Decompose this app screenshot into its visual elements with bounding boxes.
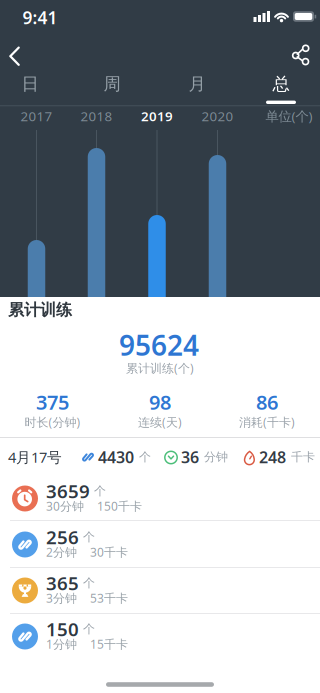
staticText: 53千卡 — [90, 590, 128, 606]
staticText: 3分钟 — [46, 590, 77, 606]
button[interactable]: 3659 — [12, 475, 320, 521]
staticText: 1分钟 — [46, 636, 77, 652]
button[interactable]: 日 — [0, 67, 60, 101]
staticText: 36 — [181, 446, 199, 468]
staticText: 个 — [139, 450, 151, 464]
button[interactable] — [5, 44, 29, 68]
staticText: 9:41 — [22, 6, 57, 29]
staticText: 365 — [46, 571, 79, 595]
button[interactable]: 150 — [12, 613, 320, 659]
staticText: 月 — [188, 73, 205, 95]
staticText: 375 — [36, 389, 69, 415]
staticText: 2020 — [201, 107, 233, 125]
staticText: 30千卡 — [90, 544, 128, 560]
button[interactable]: 总 — [242, 67, 320, 101]
staticText: 2019 — [141, 107, 173, 125]
staticText: 86 — [256, 389, 278, 415]
staticText: 分钟 — [204, 450, 228, 464]
staticText: 个 — [83, 622, 95, 636]
staticText: 时长(分钟) — [24, 414, 80, 430]
staticText: 总 — [272, 73, 289, 95]
staticText: 248 — [259, 446, 286, 468]
staticText: 2分钟 — [46, 544, 77, 560]
button[interactable]: 月 — [164, 67, 230, 101]
staticText: 个 — [83, 576, 95, 590]
staticText: 2018 — [80, 107, 112, 125]
staticText: 30分钟 — [46, 498, 84, 514]
staticText: 98 — [149, 389, 171, 415]
staticText: 3659 — [46, 479, 90, 503]
staticText: 单位(个) — [265, 107, 312, 125]
staticText: 累计训练(个) — [126, 360, 194, 376]
staticText: 连续(天) — [138, 414, 182, 430]
button[interactable]: 256 — [12, 521, 320, 567]
staticText: 4月17号 — [8, 447, 62, 467]
staticText: 日 — [21, 73, 38, 95]
staticText: 消耗(千卡) — [239, 414, 295, 430]
staticText: 个 — [83, 530, 95, 544]
staticText: 256 — [46, 525, 79, 549]
staticText: 千卡 — [291, 450, 315, 464]
button[interactable]: 周 — [60, 67, 164, 101]
staticText: 15千卡 — [90, 636, 128, 652]
staticText: 2017 — [20, 107, 52, 125]
staticText: 95624 — [119, 326, 199, 364]
staticText: 个 — [94, 484, 106, 498]
button[interactable] — [292, 44, 312, 66]
staticText: 150千卡 — [97, 498, 142, 514]
button[interactable]: 365 — [12, 567, 320, 613]
staticText: 150 — [46, 617, 79, 641]
staticText: 累计训练 — [8, 300, 72, 320]
staticText: 周 — [103, 73, 120, 95]
staticText: 4430 — [98, 446, 134, 468]
